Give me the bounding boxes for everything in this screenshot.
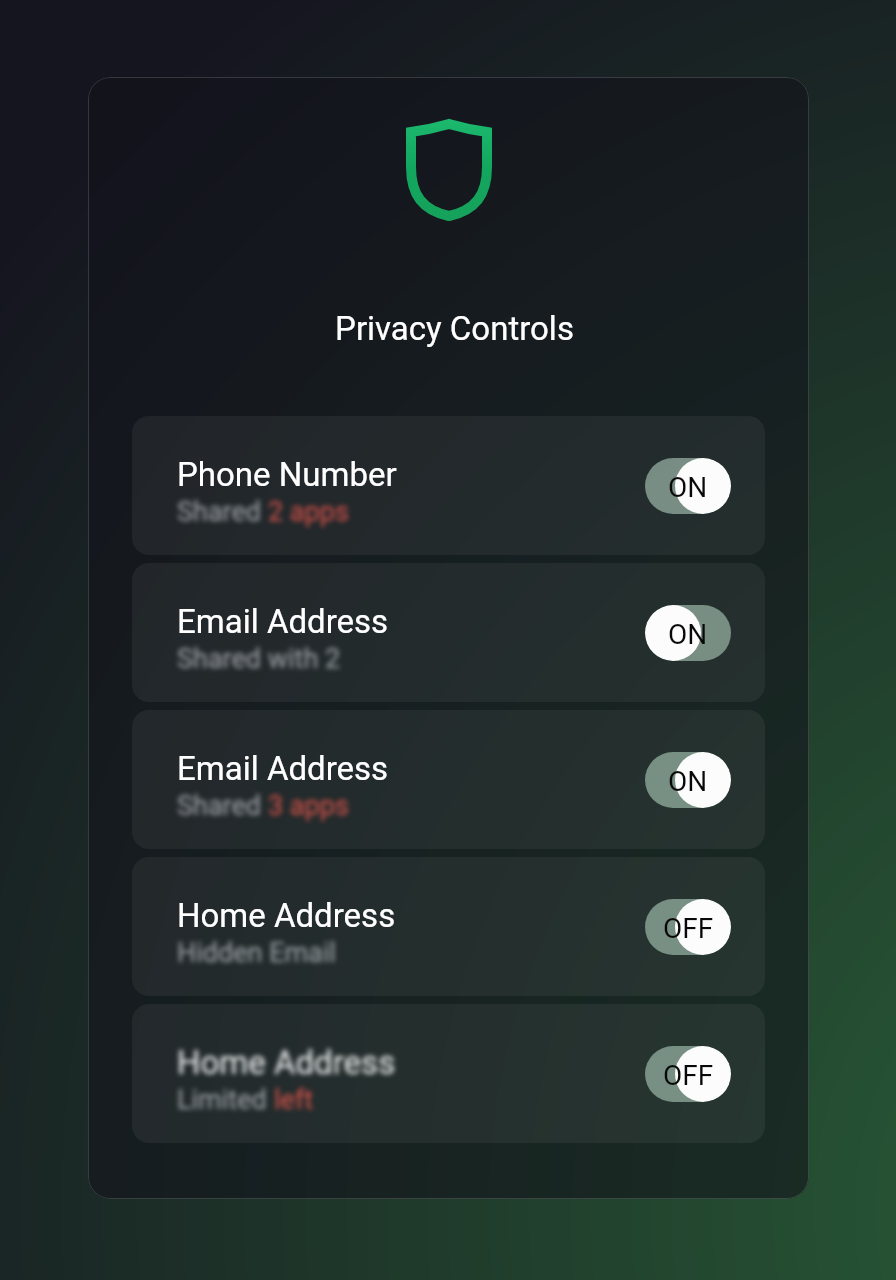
staticText: Shared	[177, 496, 268, 528]
staticText: Email Address	[177, 749, 389, 788]
button[interactable]: Phone Number	[132, 416, 765, 555]
staticText: 3 apps	[268, 790, 349, 822]
staticText: OFF	[663, 1059, 714, 1092]
staticText: Home Address	[177, 896, 396, 935]
staticText: Phone Number	[177, 455, 397, 494]
staticText: Email Address	[177, 602, 389, 641]
button[interactable]: Email Address	[132, 710, 765, 849]
button[interactable]: Privacy toggle OFF	[645, 1046, 731, 1102]
staticText: Shared with 2	[177, 643, 341, 675]
button[interactable]: Privacy toggle OFF	[645, 899, 731, 955]
staticText: Shared	[177, 790, 268, 822]
button[interactable]: Privacy toggle ON	[645, 458, 731, 514]
button[interactable]: Home Address	[132, 857, 765, 996]
staticText: Hidden Email	[177, 937, 337, 969]
staticText: ON	[668, 618, 708, 651]
staticText: ON	[668, 471, 708, 504]
button[interactable]: Email Address	[132, 563, 765, 702]
staticText: OFF	[663, 912, 714, 945]
staticText: left	[274, 1084, 314, 1116]
button[interactable]: Home Address	[132, 1004, 765, 1143]
staticText: ON	[668, 765, 708, 798]
button[interactable]: Privacy toggle ON	[645, 605, 731, 661]
staticText: Privacy Controls	[94, 309, 809, 348]
button[interactable]: Privacy toggle ON	[645, 752, 731, 808]
staticText: Limited	[177, 1084, 274, 1116]
staticText: 2 apps	[268, 496, 349, 528]
staticText: Home Address	[177, 1043, 396, 1082]
